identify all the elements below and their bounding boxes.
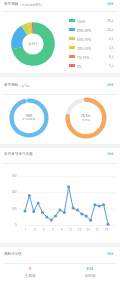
staticText: 共32个	[28, 41, 39, 46]
staticText: 主题数	[25, 274, 36, 279]
staticText: 22人	[107, 27, 115, 32]
staticText: 平均分	[82, 118, 91, 121]
staticText: 15	[87, 228, 91, 232]
staticText: 5	[43, 228, 45, 232]
staticText: 6人	[109, 36, 115, 41]
staticText: 详情	[107, 2, 114, 6]
staticText: 76.5分	[81, 113, 91, 118]
button[interactable]: 5	[0, 266, 60, 279]
staticText: 章节视频	[4, 2, 19, 7]
staticText: 0	[15, 223, 17, 227]
staticText: 300	[12, 174, 17, 178]
staticText: 详情	[107, 83, 114, 87]
staticText: 1人	[109, 63, 115, 68]
staticText: 13	[78, 228, 82, 232]
staticText: 20%-59%	[77, 46, 92, 50]
staticText: 19	[105, 228, 109, 232]
staticText: 本月章节学习次数	[4, 152, 33, 157]
staticText: 304	[86, 266, 94, 272]
staticText: 78人	[107, 18, 115, 23]
staticText: 0人	[109, 54, 115, 59]
staticText: 章节测验	[4, 83, 19, 88]
staticText: 0%	[77, 64, 82, 68]
staticText: 17	[96, 228, 100, 232]
staticText: 平均完成率	[22, 117, 36, 120]
staticText: 80%-99%	[77, 28, 92, 32]
staticText: 200	[12, 190, 17, 194]
staticText: 回复数	[85, 274, 96, 279]
button[interactable]: 304	[60, 266, 120, 279]
staticText: 详情	[107, 252, 114, 256]
staticText: 3	[34, 228, 36, 232]
staticText: 60%-79%	[77, 37, 92, 41]
staticText: 9	[61, 228, 63, 232]
staticText: 5	[29, 266, 32, 272]
staticText: 3人	[109, 45, 115, 50]
staticText: 11	[69, 228, 73, 232]
button[interactable]: 详情	[107, 152, 120, 156]
staticText: 详情	[107, 152, 114, 156]
staticText: （平均完成率85%）	[19, 3, 44, 7]
staticText: （共7份）	[19, 84, 32, 88]
staticText: 100%	[77, 19, 86, 23]
staticText: 1%-19%	[77, 55, 90, 59]
staticText: 96%	[26, 113, 33, 117]
button[interactable]: 详情	[107, 2, 120, 6]
button[interactable]: 详情	[107, 83, 120, 87]
staticText: 100	[12, 207, 17, 211]
staticText: 7	[52, 228, 54, 232]
staticText: 课程讨论区	[4, 252, 22, 257]
button[interactable]: 详情	[107, 252, 120, 256]
staticText: 1	[25, 228, 27, 232]
